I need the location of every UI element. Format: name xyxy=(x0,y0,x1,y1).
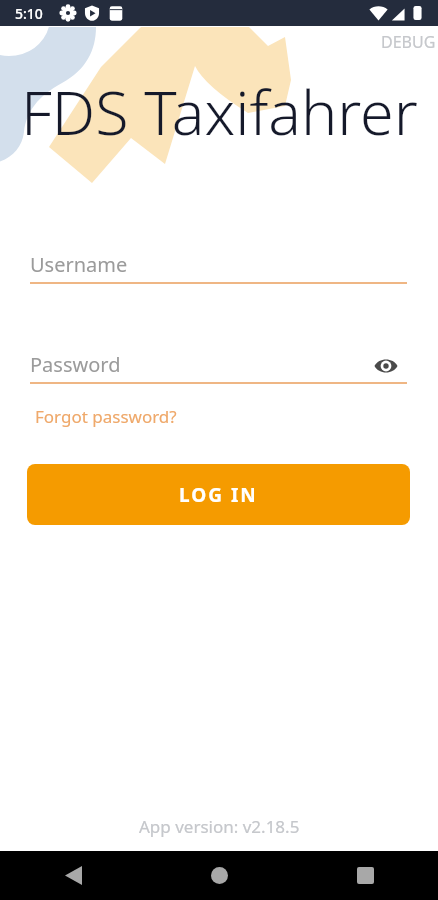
staticText: 5:10 xyxy=(15,4,43,23)
button[interactable]: Show password xyxy=(372,352,400,380)
button[interactable]: LOG IN xyxy=(27,464,410,525)
staticText: Password xyxy=(30,351,121,378)
staticText: FDS Taxifahrer xyxy=(21,70,418,153)
staticText: Username xyxy=(30,251,128,278)
button[interactable]: Forgot password? xyxy=(34,403,178,430)
staticText: Forgot password? xyxy=(35,405,177,428)
staticText: LOG IN xyxy=(179,482,258,508)
staticText: DEBUG xyxy=(381,31,436,53)
staticText: App version: v2.18.5 xyxy=(139,815,300,838)
button[interactable]: Recent apps xyxy=(292,851,438,900)
button[interactable]: Home xyxy=(146,851,292,900)
button[interactable]: Back xyxy=(0,851,146,900)
